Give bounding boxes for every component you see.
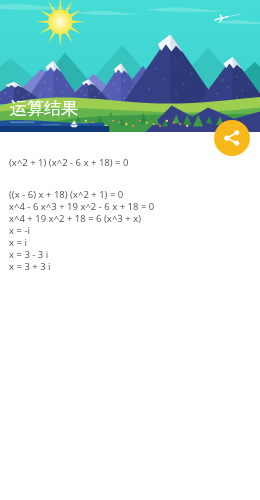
button[interactable]: Share <box>214 120 250 156</box>
staticText: x^4 + 19 x^2 + 18 = 6 (x^3 + x) <box>9 212 142 224</box>
staticText: ((x - 6) x + 18) (x^2 + 1) = 0 <box>9 188 124 200</box>
staticText: (x^2 + 1) (x^2 - 6 x + 18) = 0 <box>9 156 129 168</box>
staticText: x = -i <box>9 224 30 236</box>
staticText: x = i <box>9 236 27 248</box>
staticText: x = 3 + 3 i <box>9 260 51 272</box>
staticText: 运算结果 <box>10 98 78 119</box>
staticText: x = 3 - 3 i <box>9 248 49 260</box>
staticText: x^4 - 6 x^3 + 19 x^2 - 6 x + 18 = 0 <box>9 200 155 212</box>
